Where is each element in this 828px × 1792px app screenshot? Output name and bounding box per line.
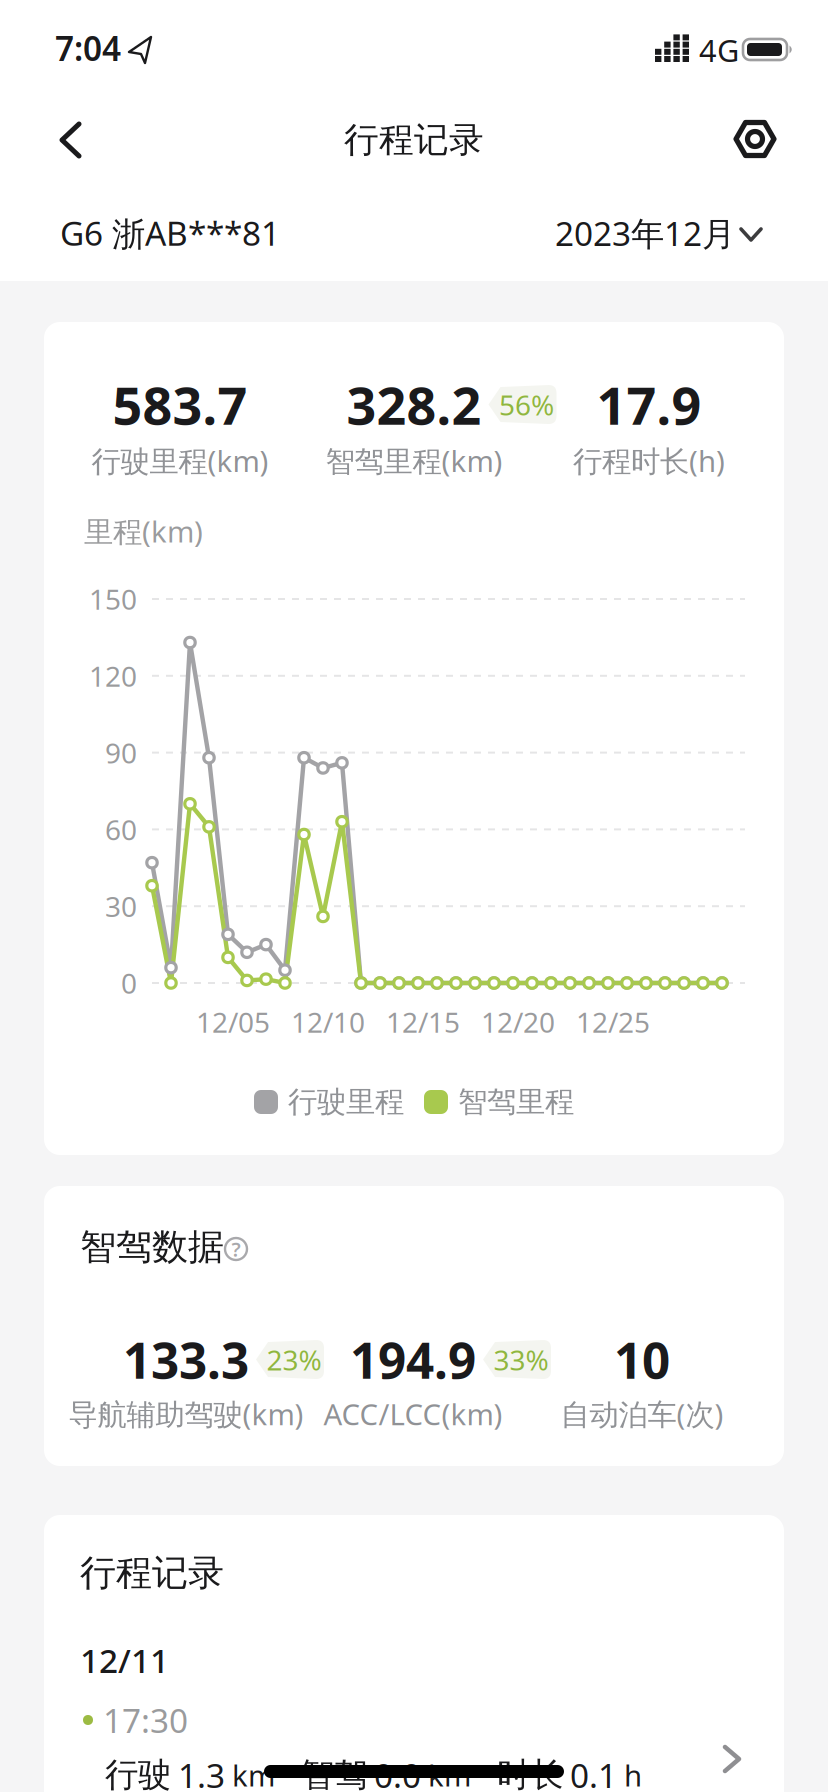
staticText: 33%: [493, 1341, 548, 1378]
staticText: 10: [614, 1327, 670, 1392]
button[interactable]: [0, 0, 828, 281]
staticText: 行驶里程(km): [91, 441, 268, 480]
staticText: 60: [105, 811, 137, 848]
staticText: 0.1: [570, 1753, 617, 1792]
staticText: 2023年12月: [555, 211, 735, 255]
staticText: 17.9: [596, 370, 701, 439]
staticText: 智驾数据: [80, 1225, 224, 1269]
staticText: 17:30: [103, 1698, 188, 1742]
staticText: 12/15: [386, 1003, 460, 1041]
staticText: 行程记录: [344, 119, 484, 161]
staticText: 里程(km): [84, 511, 203, 550]
staticText: 0: [121, 964, 137, 1002]
staticText: 智驾里程: [458, 1084, 574, 1120]
staticText: 时长: [497, 1754, 563, 1792]
staticText: G6 浙AB***81: [60, 211, 280, 255]
staticText: km: [232, 1755, 275, 1792]
staticText: 4G: [699, 30, 739, 70]
staticText: 328.2: [346, 370, 481, 439]
staticText: 12/11: [80, 1638, 169, 1682]
staticText: 120: [89, 657, 137, 694]
staticText: ?: [231, 1236, 240, 1262]
staticText: ACC/LCC(km): [323, 1394, 502, 1433]
staticText: 133.3: [123, 1327, 249, 1392]
staticText: 56%: [499, 386, 554, 423]
staticText: 0.0: [374, 1753, 421, 1792]
button[interactable]: 2023年12月: [0, 0, 828, 281]
staticText: 1.3: [178, 1753, 225, 1792]
staticText: 12/25: [576, 1003, 650, 1041]
staticText: 12/20: [481, 1003, 555, 1041]
button[interactable]: ?: [221, 1234, 251, 1264]
staticText: 行程时长(h): [573, 441, 725, 480]
staticText: 行驶: [105, 1754, 171, 1792]
staticText: 90: [105, 734, 137, 771]
staticText: 23%: [266, 1341, 321, 1378]
staticText: 12/10: [291, 1003, 365, 1041]
staticText: 7:04: [55, 26, 121, 70]
staticText: km: [428, 1755, 471, 1792]
staticText: 行驶里程: [288, 1084, 404, 1120]
button[interactable]: 行驶: [44, 1515, 784, 1792]
staticText: 12/05: [196, 1003, 270, 1041]
staticText: h: [624, 1755, 642, 1792]
staticText: 导航辅助驾驶(km): [68, 1394, 303, 1433]
staticText: 583.7: [112, 370, 247, 439]
staticText: 194.9: [350, 1327, 476, 1392]
button[interactable]: [0, 0, 828, 281]
staticText: 150: [89, 580, 137, 618]
staticText: 自动泊车(次): [560, 1394, 723, 1433]
staticText: 智驾: [301, 1754, 367, 1792]
staticText: 行程记录: [80, 1551, 224, 1595]
staticText: 智驾里程(km): [325, 441, 502, 480]
staticText: 30: [105, 888, 137, 925]
